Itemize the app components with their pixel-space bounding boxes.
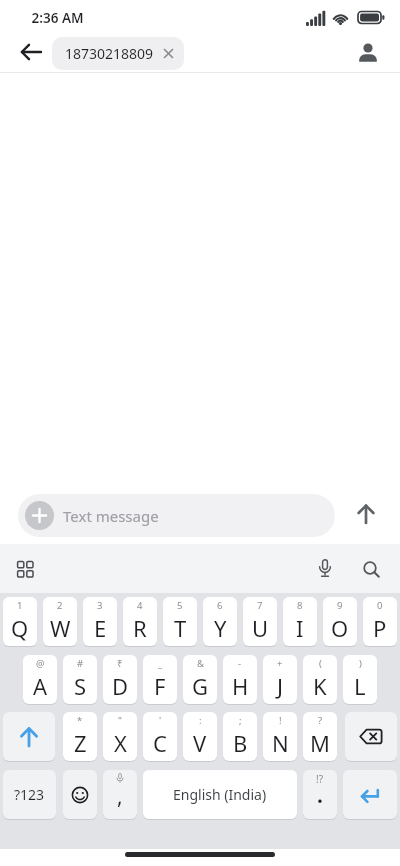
staticText: H: [232, 671, 249, 701]
button[interactable]: -: [223, 655, 257, 704]
button[interactable]: Text message: [18, 494, 335, 537]
staticText: 1: [17, 599, 23, 612]
staticText: 6: [217, 599, 223, 612]
staticText: V: [193, 728, 207, 758]
staticText: T: [174, 613, 187, 643]
staticText: 2:36 AM: [31, 9, 84, 27]
staticText: ": [118, 714, 122, 727]
staticText: @: [36, 657, 45, 670]
staticText: R: [133, 613, 147, 643]
staticText: B: [233, 728, 248, 758]
button[interactable]: ?123: [3, 770, 56, 819]
button[interactable]: [63, 770, 97, 819]
button[interactable]: *: [63, 712, 97, 761]
staticText: +: [277, 657, 283, 670]
button[interactable]: !: [263, 712, 297, 761]
staticText: O: [331, 613, 349, 643]
staticText: 5: [177, 599, 183, 612]
button[interactable]: [352, 38, 384, 68]
staticText: Z: [74, 728, 87, 758]
button[interactable]: 18730218809: [52, 37, 184, 70]
staticText: 9: [337, 599, 343, 612]
staticText: 4: [137, 599, 143, 612]
staticText: Text message: [63, 506, 159, 526]
staticText: 2: [57, 599, 63, 612]
button[interactable]: [356, 554, 386, 584]
staticText: L: [354, 671, 366, 701]
button[interactable]: 9: [323, 597, 357, 646]
staticText: :: [199, 714, 202, 727]
button[interactable]: 1: [3, 597, 37, 646]
button[interactable]: [12, 36, 52, 68]
button[interactable]: [343, 770, 397, 819]
staticText: !: [279, 714, 282, 727]
staticText: _: [158, 657, 163, 670]
button[interactable]: ₹: [103, 655, 137, 704]
staticText: X: [114, 728, 127, 758]
staticText: 18730218809: [65, 44, 154, 63]
staticText: N: [272, 728, 289, 758]
staticText: 3: [97, 599, 103, 612]
button[interactable]: 3: [83, 597, 117, 646]
staticText: E: [94, 613, 107, 643]
button[interactable]: 6: [203, 597, 237, 646]
staticText: ?: [318, 714, 323, 727]
button[interactable]: ": [103, 712, 137, 761]
button[interactable]: [310, 554, 340, 584]
staticText: U: [252, 613, 269, 643]
staticText: ): [359, 657, 362, 670]
staticText: ,: [117, 782, 123, 811]
button[interactable]: [348, 498, 384, 534]
button[interactable]: _: [143, 655, 177, 704]
button[interactable]: 7: [243, 597, 277, 646]
staticText: F: [154, 671, 166, 701]
button[interactable]: English (India): [143, 770, 297, 819]
button[interactable]: &: [183, 655, 217, 704]
button[interactable]: [345, 712, 397, 761]
button[interactable]: [10, 554, 40, 584]
button[interactable]: 0: [363, 597, 397, 646]
staticText: ₹: [117, 657, 123, 670]
staticText: S: [74, 671, 87, 701]
button[interactable]: #: [63, 655, 97, 704]
staticText: English (India): [173, 785, 267, 804]
button[interactable]: (: [303, 655, 337, 704]
staticText: C: [153, 728, 167, 758]
button[interactable]: @: [23, 655, 57, 704]
button[interactable]: 8: [283, 597, 317, 646]
staticText: G: [192, 671, 209, 701]
button[interactable]: +: [263, 655, 297, 704]
staticText: (: [319, 657, 322, 670]
staticText: 0: [377, 599, 383, 612]
staticText: 8: [297, 599, 303, 612]
button[interactable]: 4: [123, 597, 157, 646]
staticText: ?123: [14, 785, 45, 804]
staticText: !?: [316, 772, 324, 786]
staticText: J: [277, 671, 284, 701]
staticText: A: [33, 671, 48, 701]
button[interactable]: [3, 712, 55, 761]
button[interactable]: :: [183, 712, 217, 761]
staticText: ;: [239, 714, 242, 727]
staticText: M: [310, 728, 330, 758]
staticText: &: [197, 657, 204, 670]
staticText: #: [77, 657, 84, 670]
staticText: Q: [11, 613, 29, 643]
staticText: -: [238, 657, 242, 670]
button[interactable]: ): [343, 655, 377, 704]
button[interactable]: ,: [103, 770, 137, 819]
button[interactable]: ': [143, 712, 177, 761]
button[interactable]: 2: [43, 597, 77, 646]
button[interactable]: ?: [303, 712, 337, 761]
button[interactable]: ;: [223, 712, 257, 761]
staticText: Y: [214, 613, 227, 643]
staticText: I: [296, 613, 304, 643]
button[interactable]: !?: [303, 770, 337, 819]
staticText: K: [313, 671, 327, 701]
staticText: D: [112, 671, 129, 701]
button[interactable]: 5: [163, 597, 197, 646]
staticText: 7: [257, 599, 263, 612]
staticText: W: [50, 613, 71, 643]
staticText: ': [159, 714, 162, 727]
staticText: .: [317, 781, 323, 810]
